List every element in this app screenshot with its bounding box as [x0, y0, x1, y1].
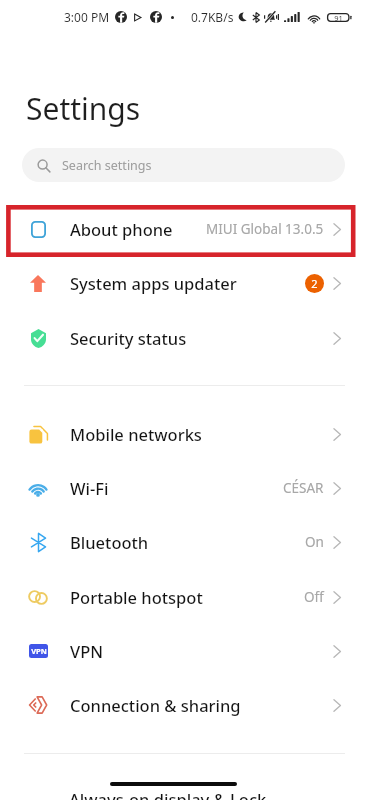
staticText: Search settings — [62, 157, 152, 174]
staticText: VPN — [70, 640, 104, 662]
button[interactable]: VPN — [0, 624, 369, 678]
staticText: About phone — [70, 218, 173, 240]
button[interactable]: Connection & sharing — [0, 678, 369, 732]
staticText: 2 — [311, 276, 318, 291]
staticText: Always-on display & Lock — [69, 788, 267, 800]
staticText: 91 — [334, 13, 343, 22]
button[interactable]: Mobile networks — [0, 407, 369, 461]
staticText: VPN — [31, 646, 47, 656]
button[interactable]: System apps updater — [0, 256, 369, 310]
staticText: 3:00 PM — [64, 9, 110, 25]
button[interactable]: Always-on display & Lock — [0, 788, 369, 800]
button[interactable]: Search settings — [22, 148, 345, 182]
staticText: Mobile networks — [70, 423, 202, 445]
button[interactable]: Security status — [0, 311, 369, 365]
button[interactable]: Wi-Fi — [0, 461, 369, 515]
staticText: Settings — [26, 88, 141, 129]
staticText: Wi-Fi — [70, 477, 109, 499]
staticText: 0.7KB/s — [191, 9, 234, 25]
staticText: Security status — [70, 327, 187, 349]
staticText: On — [305, 533, 324, 551]
staticText: Bluetooth — [70, 531, 149, 553]
staticText: Connection & sharing — [70, 694, 241, 716]
button[interactable]: Portable hotspot — [0, 570, 369, 624]
staticText: Off — [304, 588, 324, 606]
staticText: MIUI Global 13.0.5 — [206, 220, 324, 238]
staticText: CÉSAR — [283, 479, 324, 497]
button[interactable]: About phone — [0, 202, 369, 256]
staticText: Portable hotspot — [70, 586, 203, 608]
button[interactable]: Bluetooth — [0, 515, 369, 569]
staticText: System apps updater — [70, 272, 237, 294]
